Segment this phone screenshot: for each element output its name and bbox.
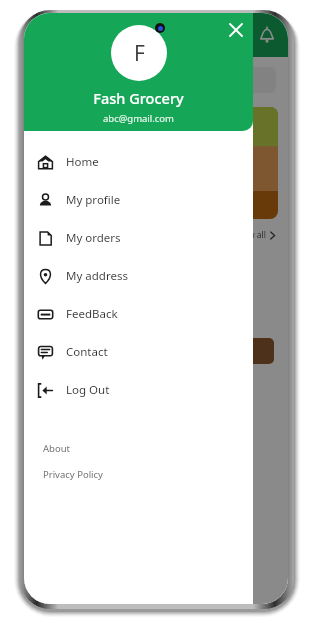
button[interactable]: Privacy Policy: [24, 461, 253, 487]
staticText: F: [134, 39, 145, 68]
button[interactable]: Home: [24, 143, 253, 181]
staticText: Privacy Policy: [43, 468, 103, 481]
staticText: abc@gmail.com: [103, 112, 174, 125]
button[interactable]: Log Out: [24, 371, 253, 409]
button[interactable]: My orders: [24, 219, 253, 257]
staticText: Log Out: [66, 382, 110, 398]
staticText: About: [43, 442, 70, 455]
staticText: Fash Grocery: [93, 88, 184, 108]
staticText: FeedBack: [66, 306, 118, 322]
button[interactable]: FeedBack: [24, 295, 253, 333]
staticText: Contact: [66, 344, 108, 360]
button[interactable]: Close: [223, 17, 249, 43]
staticText: My orders: [66, 230, 121, 246]
button[interactable]: My profile: [24, 181, 253, 219]
button[interactable]: About: [24, 435, 253, 461]
staticText: Home: [66, 154, 99, 170]
button[interactable]: F: [111, 25, 167, 81]
staticText: My address: [66, 268, 128, 284]
button[interactable]: Contact: [24, 333, 253, 371]
staticText: View all: [236, 229, 266, 241]
button[interactable]: Notifications: [254, 22, 280, 48]
staticText: Categories: [36, 229, 82, 241]
button[interactable]: My address: [24, 257, 253, 295]
staticText: My profile: [66, 192, 121, 208]
button[interactable]: Close navigation drawer: [24, 13, 288, 604]
